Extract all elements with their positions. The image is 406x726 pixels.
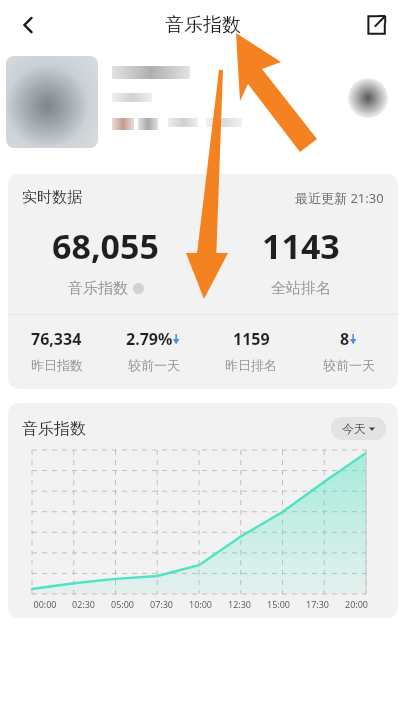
button[interactable]: 今天 [331,417,386,440]
staticText: 音乐指数 [22,419,86,439]
staticText: 17:30 [298,598,337,610]
staticText: 07:30 [142,598,181,610]
button[interactable]: Avatar [6,56,98,148]
staticText: 20:00 [337,598,376,610]
staticText: 02:30 [64,598,103,610]
staticText: 68,055 [52,223,159,269]
staticText: 2.79% [126,328,173,350]
staticText: 1159 [233,328,270,350]
button[interactable]: Share [356,5,396,45]
staticText: 76,334 [31,328,82,350]
staticText: 1143 [262,223,340,269]
staticText: 00:00 [26,598,64,610]
staticText: 05:00 [103,598,142,610]
staticText: 音乐指数 [68,279,128,298]
staticText: 最近更新 21:30 [295,189,384,207]
staticText: 昨日指数 [31,357,83,373]
staticText: 12:30 [220,598,259,610]
staticText: 较前一天 [128,357,180,373]
staticText: 今天 [342,421,366,436]
staticText: 10:00 [181,598,220,610]
staticText: 15:00 [259,598,298,610]
staticText: 较前一天 [323,357,375,373]
button[interactable]: Back [8,5,48,45]
staticText: 实时数据 [22,188,82,207]
staticText: 音乐指数 [165,13,241,37]
staticText: 8 [340,328,350,350]
staticText: 昨日排名 [225,357,277,373]
staticText: 全站排名 [271,279,331,298]
